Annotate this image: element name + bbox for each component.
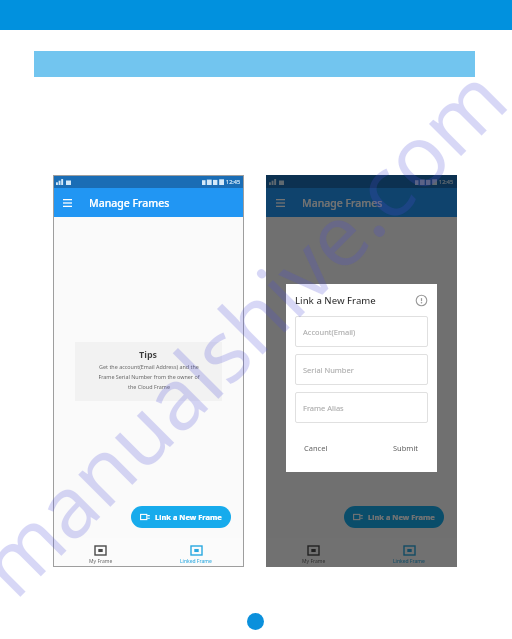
button[interactable]: Link a New Frame [344, 506, 444, 528]
button[interactable]: Link a New Frame [131, 506, 231, 528]
button[interactable]: Help [415, 294, 428, 307]
button[interactable]: Linked Frame [361, 541, 457, 565]
staticText: Link a New Frame [295, 294, 376, 307]
staticText: manualshive.com [0, 40, 512, 619]
button[interactable]: Cancel [301, 440, 331, 456]
staticText: Linked Frame [180, 558, 212, 565]
staticText: Manage Frames [89, 196, 170, 210]
staticText: My Frame [302, 558, 326, 565]
button[interactable]: Linked Frame [148, 541, 244, 565]
staticText: 12:45 [439, 178, 454, 185]
staticText: Account(Email) [303, 327, 356, 337]
staticText: Link a New Frame [368, 512, 435, 522]
button[interactable]: Menu [272, 195, 288, 211]
staticText: 12:45 [226, 178, 241, 185]
staticText: Serial Number [303, 365, 354, 375]
button[interactable]: Submit [390, 440, 422, 456]
staticText: Manage Frames [302, 196, 383, 210]
staticText: Tips [139, 348, 158, 360]
button[interactable]: My Frame [53, 541, 148, 565]
button[interactable]: Menu [59, 195, 75, 211]
staticText: Link a New Frame [155, 512, 222, 522]
staticText: Linked Frame [393, 558, 425, 565]
staticText: My Frame [89, 558, 113, 565]
staticText: Get the account(Email Address) and the F… [98, 363, 200, 390]
button[interactable]: My Frame [266, 541, 361, 565]
staticText: Frame Alias [303, 403, 344, 413]
